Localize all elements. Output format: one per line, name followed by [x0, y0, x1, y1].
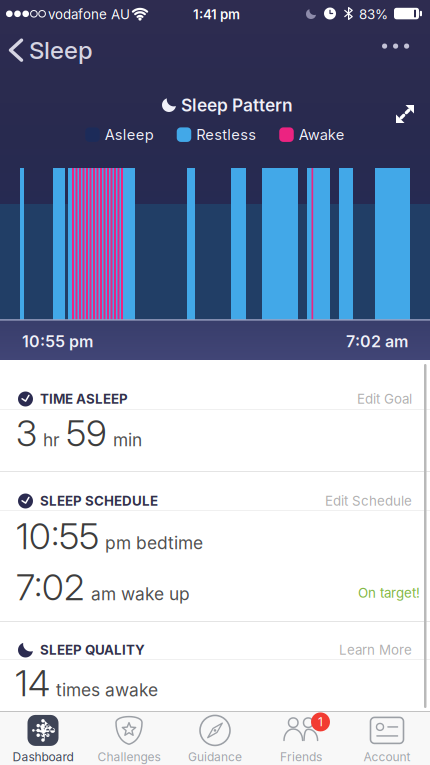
- staticText: 83%: [359, 6, 388, 22]
- staticText: 10:55 pm: [22, 332, 93, 351]
- staticText: On target!: [358, 585, 420, 601]
- staticText: 3: [16, 412, 37, 454]
- staticText: min: [113, 430, 142, 450]
- staticText: Friends: [280, 750, 322, 764]
- button[interactable]: Guidance: [172, 713, 258, 765]
- staticText: TIME ASLEEP: [40, 391, 128, 407]
- staticText: Edit Schedule: [325, 493, 412, 509]
- staticText: 59: [66, 412, 107, 454]
- button[interactable]: Learn More: [339, 642, 430, 658]
- staticText: times awake: [56, 680, 158, 700]
- staticText: Edit Goal: [357, 391, 412, 407]
- staticText: Awake: [299, 126, 345, 143]
- staticText: Guidance: [188, 750, 242, 764]
- staticText: Restless: [196, 126, 256, 143]
- button[interactable]: 1: [258, 713, 344, 765]
- staticText: Asleep: [105, 126, 154, 143]
- staticText: Learn More: [339, 642, 412, 658]
- staticText: Sleep: [29, 36, 93, 64]
- staticText: Challenges: [97, 750, 160, 764]
- button[interactable]: More options: [382, 43, 410, 49]
- staticText: Sleep Pattern: [181, 95, 293, 115]
- staticText: 1:41 pm: [193, 6, 240, 22]
- staticText: 10:55: [16, 515, 99, 557]
- button[interactable]: Sleep: [8, 36, 93, 64]
- staticText: am wake up: [91, 584, 190, 604]
- staticText: SLEEP QUALITY: [40, 642, 145, 658]
- staticText: 7:02: [16, 566, 85, 608]
- button[interactable]: Challenges: [86, 713, 172, 765]
- staticText: 7:02 am: [346, 332, 408, 351]
- button[interactable]: Edit Schedule: [325, 493, 430, 509]
- button[interactable]: Account: [344, 713, 430, 765]
- staticText: SLEEP SCHEDULE: [40, 493, 158, 509]
- button[interactable]: Edit Goal: [357, 391, 430, 407]
- button[interactable]: Dashboard: [0, 713, 86, 765]
- staticText: hr: [43, 430, 60, 450]
- staticText: Account: [363, 750, 410, 764]
- staticText: vodafone AU: [48, 6, 130, 22]
- staticText: 14: [15, 662, 50, 704]
- button[interactable]: Expand chart: [396, 105, 414, 123]
- staticText: Dashboard: [12, 750, 73, 764]
- staticText: pm bedtime: [105, 533, 203, 553]
- staticText: 1: [318, 715, 323, 729]
